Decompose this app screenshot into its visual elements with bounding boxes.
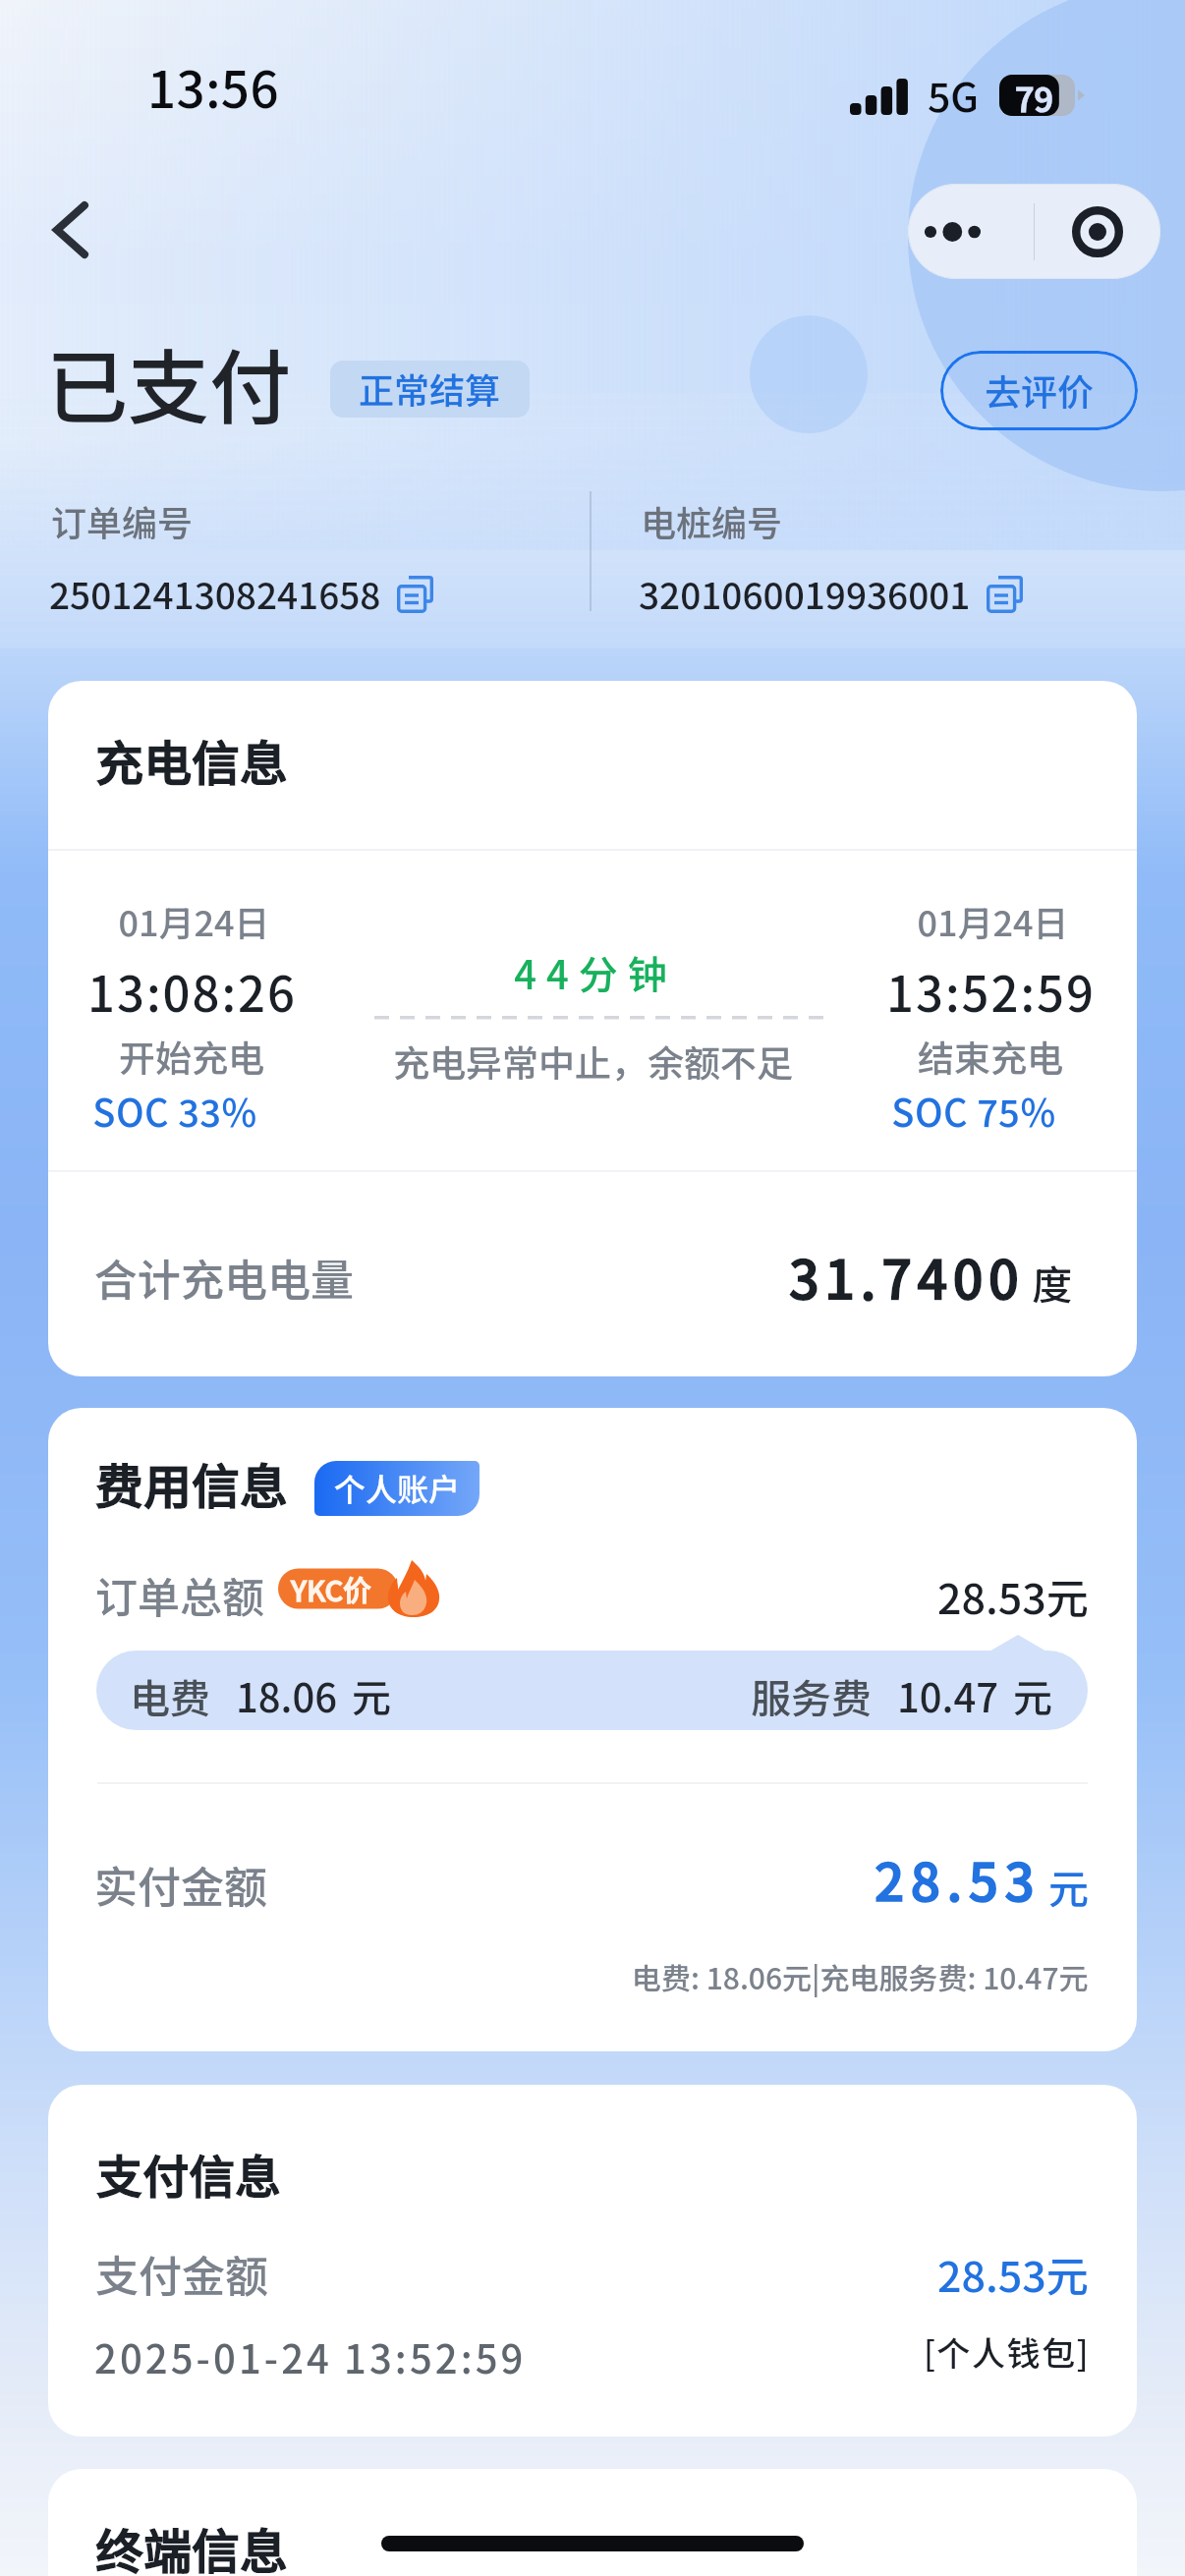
staticText: 5G xyxy=(928,65,980,123)
staticText: 订单总额 xyxy=(95,1564,264,1625)
staticText: 结束充电 xyxy=(918,1030,1063,1083)
staticText: 充电异常中止，余额不足 xyxy=(393,1035,793,1088)
staticText: 10.47 xyxy=(897,1667,999,1724)
staticText: 电费: 18.06元|充电服务费: 10.47元 xyxy=(632,1955,1089,1997)
staticText: 充电信息 xyxy=(95,725,289,795)
staticText: [个人钱包] xyxy=(924,2327,1091,2376)
staticText: 18.06 xyxy=(236,1667,338,1724)
staticText: 28.53元 xyxy=(937,1565,1089,1626)
staticText: 01月24日 xyxy=(118,895,270,946)
staticText: 元 xyxy=(1048,1857,1089,1915)
staticText: 支付信息 xyxy=(96,2140,281,2207)
button[interactable]: Copy xyxy=(395,575,434,612)
staticText: 服务费 xyxy=(751,1666,872,1724)
staticText: 元 xyxy=(1013,1667,1052,1724)
staticText: 13:08:26 xyxy=(87,956,297,1026)
staticText: 31.7400 xyxy=(789,1238,1025,1315)
staticText: 费用信息 xyxy=(95,1448,289,1518)
staticText: 实付金额 xyxy=(94,1853,267,1916)
staticText: 合计充电电量 xyxy=(94,1246,354,1309)
staticText: 度 xyxy=(1032,1253,1072,1311)
staticText: 订单编号 xyxy=(51,495,194,546)
staticText: 电费 xyxy=(130,1666,210,1724)
staticText: YKC价 xyxy=(291,1568,372,1609)
staticText: 终端信息 xyxy=(95,2513,289,2576)
button[interactable]: Close mini program xyxy=(1035,184,1160,279)
button[interactable]: More options xyxy=(908,184,1034,279)
staticText: 已支付 xyxy=(46,323,291,441)
staticText: 支付金额 xyxy=(95,2242,268,2305)
staticText: 01月24日 xyxy=(917,895,1069,946)
staticText: 13:52:59 xyxy=(886,956,1096,1026)
button[interactable]: Copy xyxy=(985,575,1024,612)
staticText: 13:56 xyxy=(147,50,279,123)
staticText: 元 xyxy=(352,1667,391,1724)
button[interactable]: Back xyxy=(26,185,116,275)
staticText: 开始充电 xyxy=(119,1030,264,1083)
staticText: 28.53 xyxy=(875,1841,1042,1917)
staticText: 2025-01-24 13:52:59 xyxy=(94,2328,527,2385)
staticText: 正常结算 xyxy=(359,363,501,414)
staticText: SOC 33% xyxy=(92,1084,257,1138)
staticText: 3201060019936001 xyxy=(639,567,971,620)
staticText: 去评价 xyxy=(985,364,1094,417)
staticText: 2501241308241658 xyxy=(49,567,381,620)
staticText: SOC 75% xyxy=(891,1084,1056,1138)
staticText: 79 xyxy=(1015,74,1053,115)
staticText: 个人账户 xyxy=(334,1465,461,1510)
staticText: 28.53元 xyxy=(937,2243,1089,2304)
staticText: 44分钟 xyxy=(514,944,677,1001)
button[interactable]: 去评价 xyxy=(940,351,1138,430)
staticText: 电桩编号 xyxy=(641,495,783,546)
